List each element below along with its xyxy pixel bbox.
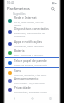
staticText: Bluetooth, transmissão de: [14, 31, 45, 34]
button[interactable]: Apps e notificações: [5, 38, 59, 49]
button[interactable]: Bateria: [5, 48, 59, 57]
staticText: Tela e papel de parede: [14, 59, 47, 63]
staticText: Dispositivos conectados: [14, 27, 49, 31]
button[interactable]: Privacidade: [5, 84, 59, 95]
button[interactable]: Search: [50, 6, 56, 12]
staticText: Permissões, atividade conta: [14, 90, 47, 93]
button[interactable]: Back: [5, 94, 23, 103]
staticText: dados: [14, 23, 22, 26]
staticText: Armazenamento: [14, 77, 39, 81]
staticText: Parâmetros: [7, 6, 30, 12]
staticText: conteúdo: [14, 34, 26, 37]
staticText: Sons: [14, 69, 21, 73]
staticText: 32% usado - 43,5 GB livres: [14, 81, 45, 84]
button[interactable]: Sons: [5, 68, 59, 77]
button[interactable]: Recents: [41, 94, 59, 103]
button[interactable]: Tela e papel de parede: [5, 57, 59, 68]
button[interactable]: Dispositivos conectados: [5, 26, 59, 37]
staticText: 10:42: [7, 1, 15, 5]
staticText: Papel de parede, suspensão: [14, 63, 47, 66]
staticText: Bateria: [14, 49, 25, 53]
staticText: Rede e Internet: [14, 16, 37, 20]
button[interactable]: Rede e Internet: [5, 16, 59, 26]
button[interactable]: Home: [23, 94, 41, 103]
staticText: Apps e notificações: [14, 40, 42, 44]
staticText: Volume, vibração, Não pert.: [14, 73, 47, 76]
staticText: Privacidade: [14, 86, 31, 90]
staticText: Sugestões: [13, 12, 26, 16]
staticText: ▮▮▰: [52, 2, 57, 5]
staticText: Assistente, apps recentes: [14, 44, 44, 47]
staticText: Wi-Fi, rede móvel, uso de: [14, 20, 44, 23]
button[interactable]: Armazenamento: [5, 77, 59, 84]
staticText: 86% - Cerca de 1 dia rest.: [14, 53, 44, 56]
